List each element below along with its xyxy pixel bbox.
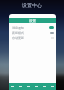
staticText: 设置中心 <box>22 2 42 8</box>
staticText: 自动更新 <box>12 36 24 40</box>
button[interactable]: Tab 2 <box>24 83 32 90</box>
button[interactable]: Tab 3 <box>32 83 40 90</box>
button[interactable]: Tab 1 <box>16 83 24 90</box>
button[interactable]: Tab 0 <box>9 83 16 90</box>
button[interactable]: 消息通知 <box>9 25 56 30</box>
button[interactable]: Tab 4 <box>40 83 48 90</box>
button[interactable]: Tab 5 <box>48 83 56 90</box>
button[interactable]: 夜间模式 <box>9 30 56 35</box>
button[interactable]: 自动更新 <box>9 35 56 40</box>
staticText: 消息通知 <box>12 26 24 30</box>
staticText: 夜间模式 <box>12 31 24 35</box>
staticText: 设置 <box>29 19 36 23</box>
